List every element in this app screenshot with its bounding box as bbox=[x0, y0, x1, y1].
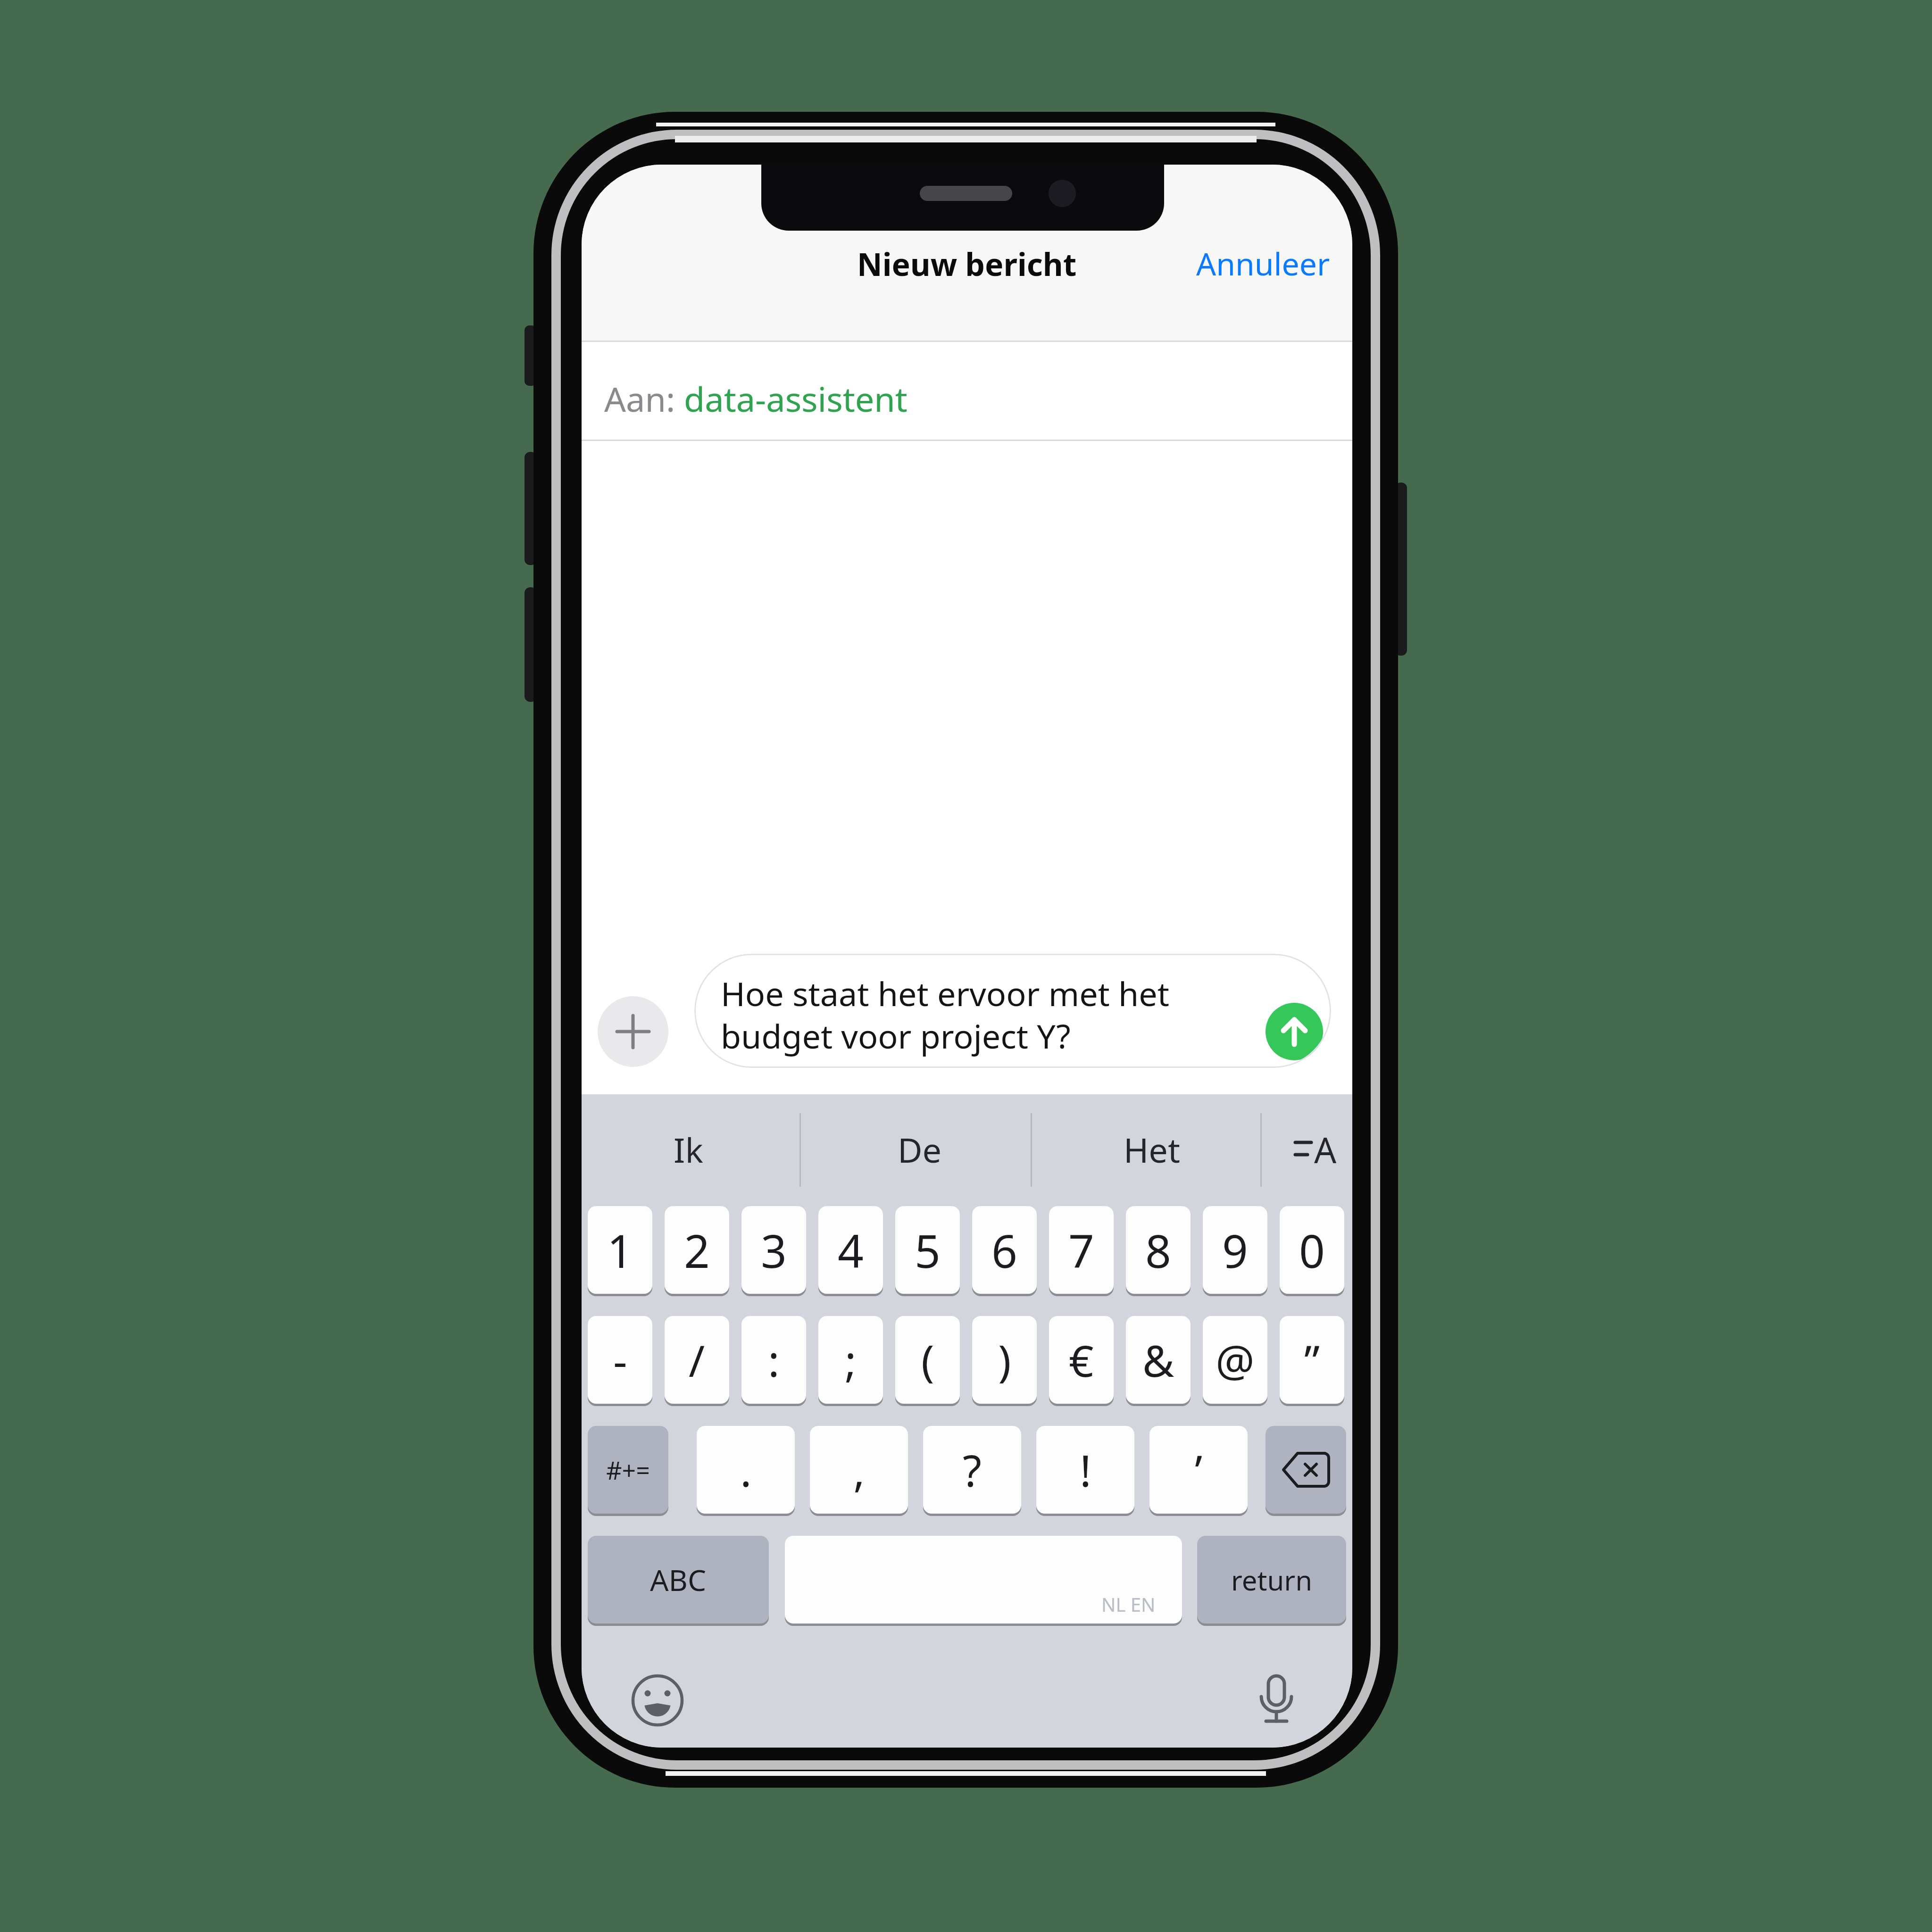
button[interactable]: / bbox=[665, 1316, 729, 1404]
button[interactable]: 4 bbox=[818, 1206, 883, 1294]
staticText: Het bbox=[1124, 1126, 1180, 1173]
button[interactable]: ABC bbox=[588, 1536, 769, 1624]
button[interactable]: ! bbox=[1036, 1426, 1134, 1514]
staticText: De bbox=[898, 1126, 942, 1173]
staticText: - bbox=[613, 1331, 627, 1390]
button[interactable] bbox=[629, 1672, 686, 1729]
button[interactable]: #+= bbox=[588, 1426, 668, 1514]
button[interactable] bbox=[1248, 1672, 1305, 1729]
staticText: 7 bbox=[1068, 1219, 1094, 1281]
button[interactable]: : bbox=[741, 1316, 806, 1404]
staticText: data-assistent bbox=[684, 375, 908, 422]
staticText: 3 bbox=[761, 1219, 787, 1281]
button[interactable]: return bbox=[1197, 1536, 1346, 1624]
staticText: ’ bbox=[1195, 1441, 1203, 1499]
button[interactable]: - bbox=[588, 1316, 652, 1404]
button[interactable]: NL EN bbox=[785, 1536, 1182, 1624]
button[interactable]: . bbox=[697, 1426, 795, 1514]
button[interactable]: ) bbox=[972, 1316, 1037, 1404]
button[interactable] bbox=[598, 996, 668, 1067]
button[interactable]: @ bbox=[1203, 1316, 1267, 1404]
staticText: 8 bbox=[1145, 1219, 1171, 1281]
button[interactable]: & bbox=[1126, 1316, 1191, 1404]
button[interactable]: 0 bbox=[1280, 1206, 1344, 1294]
staticText: 5 bbox=[915, 1219, 941, 1281]
button[interactable]: 1 bbox=[588, 1206, 652, 1294]
button[interactable]: Annuleer bbox=[1141, 235, 1330, 291]
staticText: Annuleer bbox=[1196, 242, 1330, 284]
button[interactable]: 8 bbox=[1126, 1206, 1191, 1294]
staticText: ( bbox=[921, 1331, 934, 1390]
staticText: ; bbox=[845, 1331, 857, 1390]
staticText: ” bbox=[1304, 1331, 1320, 1390]
button[interactable]: ’ bbox=[1149, 1426, 1248, 1514]
staticText: / bbox=[689, 1331, 705, 1390]
button[interactable]: 3 bbox=[741, 1206, 806, 1294]
staticText: @ bbox=[1216, 1331, 1255, 1390]
staticText: NL EN bbox=[1101, 1591, 1156, 1617]
staticText: , bbox=[853, 1441, 865, 1499]
button[interactable]: ” bbox=[1280, 1316, 1344, 1404]
staticText: 6 bbox=[991, 1219, 1017, 1281]
staticText: Ik bbox=[674, 1126, 703, 1173]
button[interactable]: 5 bbox=[895, 1206, 960, 1294]
button[interactable]: ; bbox=[818, 1316, 883, 1404]
button[interactable]: 7 bbox=[1049, 1206, 1114, 1294]
button[interactable]: De bbox=[825, 1119, 1014, 1180]
button[interactable]: ( bbox=[895, 1316, 960, 1404]
staticText: 4 bbox=[838, 1219, 864, 1281]
button[interactable]: 2 bbox=[665, 1206, 729, 1294]
button[interactable]: 6 bbox=[972, 1206, 1037, 1294]
button[interactable]: € bbox=[1049, 1316, 1114, 1404]
staticText: ! bbox=[1080, 1441, 1091, 1499]
staticText: : bbox=[768, 1331, 780, 1390]
staticText: ABC bbox=[650, 1560, 707, 1599]
button[interactable]: Ik bbox=[594, 1119, 783, 1180]
button[interactable]: ? bbox=[923, 1426, 1021, 1514]
staticText: 9 bbox=[1222, 1219, 1248, 1281]
staticText: 1 bbox=[607, 1219, 633, 1281]
staticText: Nieuw bericht bbox=[857, 242, 1077, 285]
button[interactable]: Het bbox=[1058, 1119, 1246, 1180]
staticText: A bbox=[1314, 1126, 1337, 1174]
staticText: 0 bbox=[1299, 1219, 1325, 1281]
staticText: #+= bbox=[606, 1453, 650, 1487]
button[interactable]: A bbox=[1280, 1119, 1352, 1180]
button[interactable]: 9 bbox=[1203, 1206, 1267, 1294]
staticText: Aan: bbox=[604, 375, 684, 422]
staticText: . bbox=[740, 1441, 752, 1499]
staticText: ? bbox=[963, 1441, 982, 1499]
button[interactable]: , bbox=[810, 1426, 908, 1514]
staticText: ) bbox=[998, 1331, 1011, 1390]
button[interactable] bbox=[1266, 1426, 1346, 1514]
staticText: & bbox=[1142, 1331, 1174, 1390]
staticText: Hoe staat het ervoor met het budget voor… bbox=[721, 971, 1170, 1058]
staticText: 2 bbox=[684, 1219, 710, 1281]
staticText: return bbox=[1231, 1561, 1313, 1599]
button[interactable] bbox=[1266, 1003, 1323, 1060]
staticText: € bbox=[1069, 1331, 1094, 1390]
